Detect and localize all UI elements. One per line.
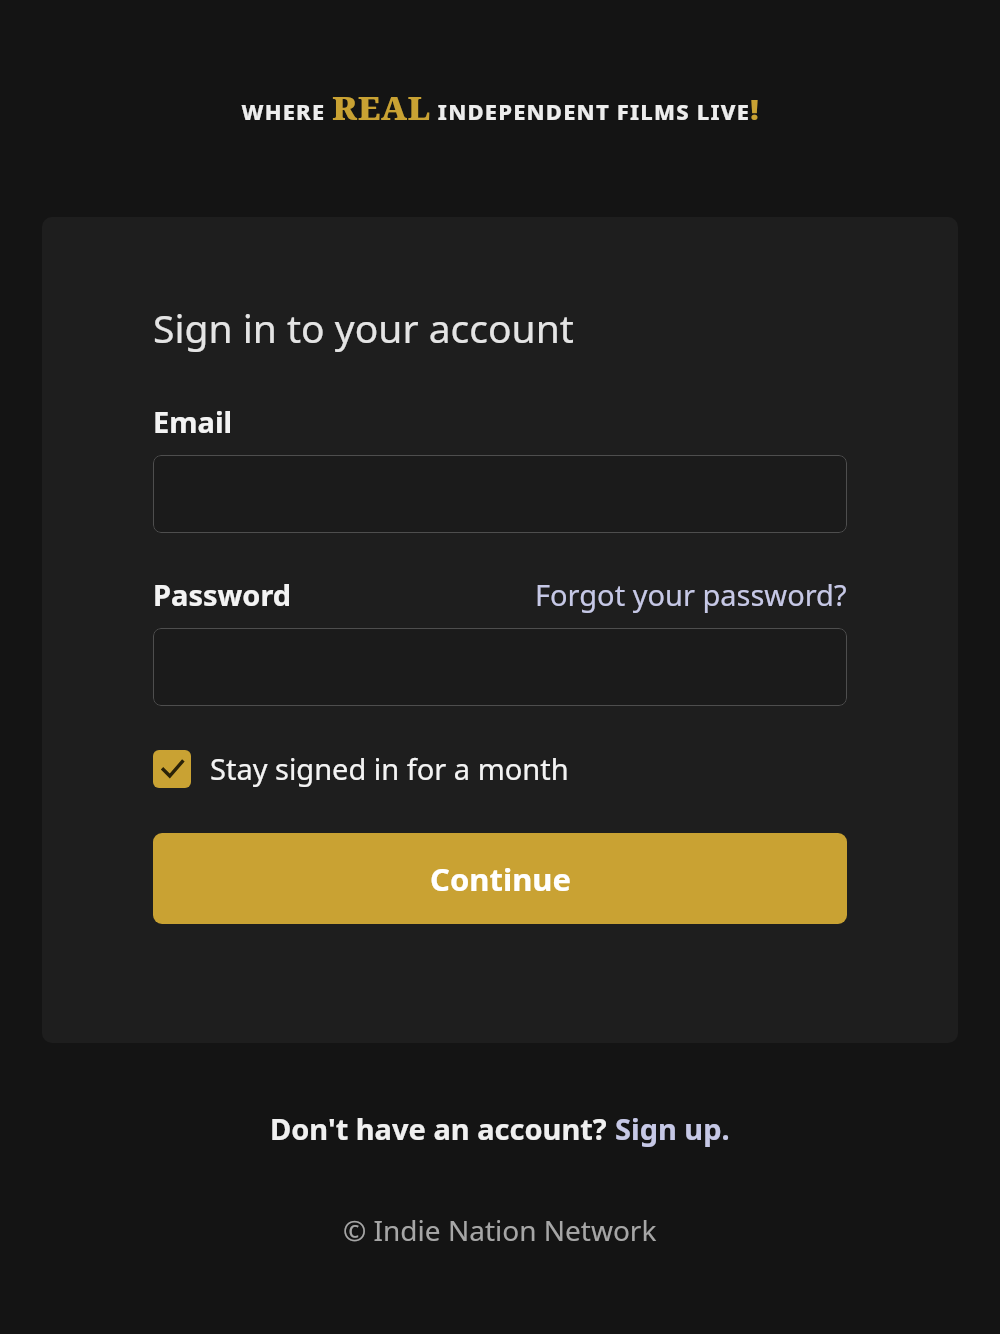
button[interactable]: Stay signed in for a month (153, 749, 569, 788)
button[interactable]: Email input field (153, 455, 847, 533)
staticText: WHERE REAL INDEPENDENT FILMS LIVE! (241, 85, 759, 130)
staticText: Email (153, 402, 233, 441)
button[interactable]: Continue (153, 833, 847, 924)
staticText: Sign up. (615, 1109, 730, 1148)
staticText: Forgot your password? (535, 575, 847, 614)
staticText: © Indie Nation Network (343, 1211, 657, 1249)
staticText: Don't have an account? (270, 1109, 615, 1148)
button[interactable]: Password input field (153, 628, 847, 706)
button[interactable]: Sign up. (615, 1109, 730, 1148)
staticText: Sign in to your account (153, 301, 574, 354)
button[interactable]: Forgot your password? (535, 575, 847, 614)
staticText: Stay signed in for a month (210, 749, 569, 788)
staticText: Continue (430, 858, 571, 900)
staticText: Password (153, 575, 292, 614)
